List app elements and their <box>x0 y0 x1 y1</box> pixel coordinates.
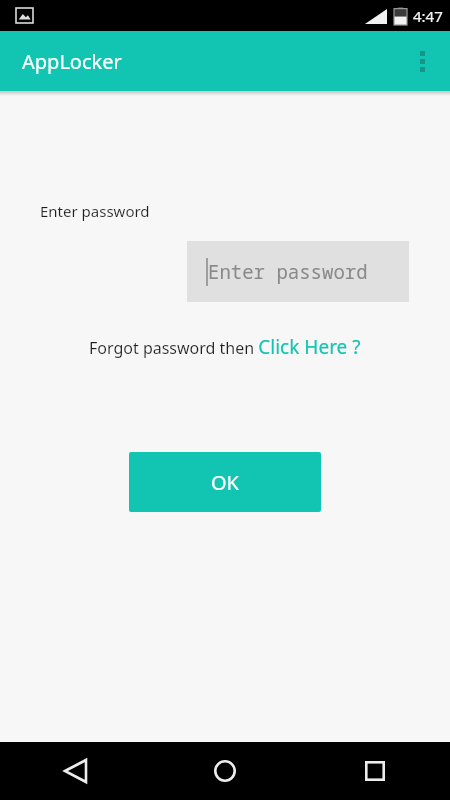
button[interactable]: Enter password <box>187 241 409 302</box>
staticText: Enter password <box>208 259 368 285</box>
button[interactable]: Home <box>150 742 300 800</box>
staticText: 4:47 <box>413 6 443 26</box>
button[interactable]: Forgot password then Click Here ? <box>89 334 361 360</box>
staticText: Enter password <box>40 201 150 221</box>
staticText: OK <box>211 469 239 496</box>
staticText: AppLocker <box>22 48 122 75</box>
staticText: Forgot password then Click Here ? <box>89 334 361 360</box>
button[interactable]: Back <box>0 742 150 800</box>
button[interactable]: OK <box>129 452 321 512</box>
button[interactable]: More options <box>398 37 446 85</box>
button[interactable]: Recent apps <box>300 742 450 800</box>
